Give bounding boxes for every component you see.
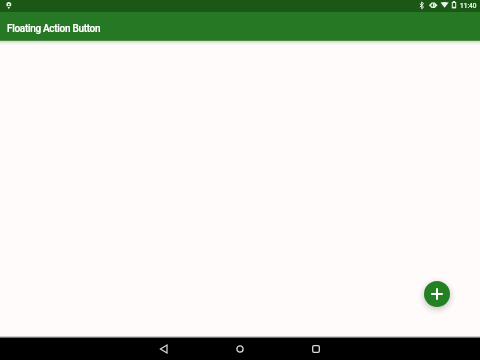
staticText: 11:40 <box>460 2 477 10</box>
button[interactable]: Add <box>424 281 450 307</box>
button[interactable]: Back <box>152 337 176 360</box>
button[interactable]: Home <box>228 337 252 360</box>
button[interactable]: Recent apps <box>304 337 328 360</box>
staticText: Floating Action Button <box>7 23 101 35</box>
